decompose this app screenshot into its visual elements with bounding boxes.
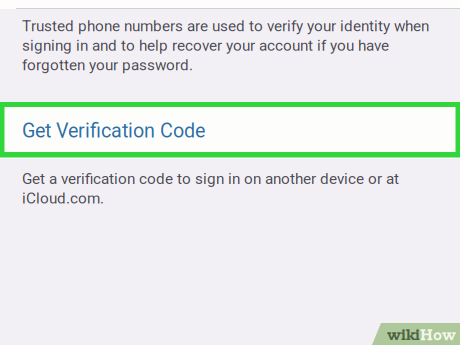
staticText: Get a verification code to sign in on an… [22,170,399,207]
staticText: How [420,325,456,345]
staticText: Get Verification Code [22,119,205,142]
staticText: wiki [387,325,420,345]
staticText: Trusted phone numbers are used to verify… [22,17,429,74]
button[interactable]: Get Verification Code [0,103,460,159]
